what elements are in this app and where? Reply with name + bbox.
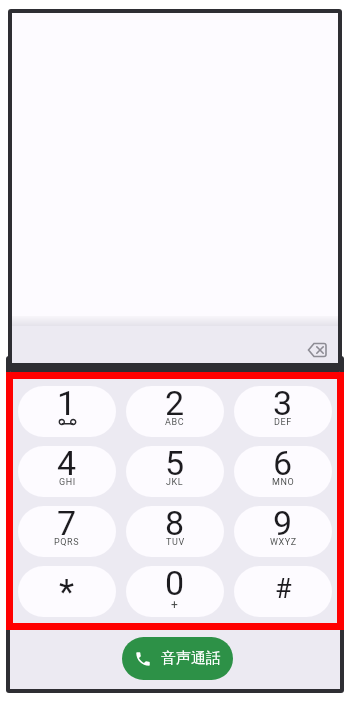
staticText: ABC — [165, 417, 185, 428]
staticText: DEF — [274, 417, 292, 428]
staticText: MNO — [272, 477, 295, 488]
staticText: 5 — [165, 446, 185, 483]
staticText: GHI — [59, 477, 76, 488]
button[interactable]: 0 — [126, 566, 224, 617]
staticText: 音声通話 — [161, 649, 221, 668]
button[interactable]: # — [234, 566, 332, 617]
button[interactable]: 1 — [18, 386, 116, 437]
staticText: 7 — [57, 506, 77, 543]
button[interactable] — [307, 341, 329, 359]
button[interactable]: 2 — [126, 386, 224, 437]
staticText: WXYZ — [270, 537, 297, 548]
staticText: 8 — [165, 506, 185, 543]
button[interactable]: 7 — [18, 506, 116, 557]
staticText: JKL — [166, 477, 184, 488]
staticText: + — [171, 598, 179, 612]
staticText: 2 — [165, 386, 185, 423]
staticText: 4 — [57, 446, 77, 483]
staticText: TUV — [166, 537, 185, 548]
staticText: 6 — [273, 446, 293, 483]
button[interactable]: 8 — [126, 506, 224, 557]
staticText: * — [59, 572, 75, 613]
button[interactable]: 6 — [234, 446, 332, 497]
button[interactable]: 9 — [234, 506, 332, 557]
staticText: 1 — [57, 386, 77, 423]
button[interactable]: 4 — [18, 446, 116, 497]
staticText: 9 — [273, 506, 293, 543]
button[interactable]: 5 — [126, 446, 224, 497]
button[interactable]: * — [18, 566, 116, 617]
button[interactable]: 音声通話 — [122, 637, 233, 680]
staticText: 0 — [165, 566, 185, 603]
staticText: 3 — [273, 386, 293, 423]
staticText: # — [275, 573, 292, 605]
button[interactable]: 3 — [234, 386, 332, 437]
staticText: PQRS — [54, 537, 80, 548]
